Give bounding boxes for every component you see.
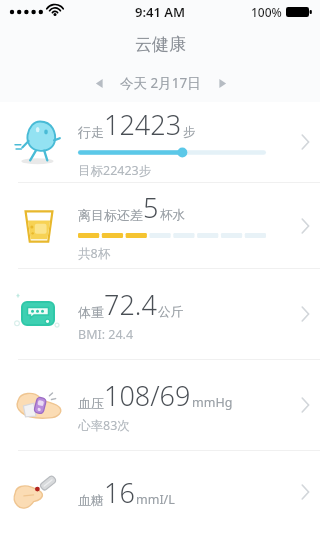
staticText: 体重 bbox=[78, 304, 104, 320]
staticText: 9:41 AM bbox=[0, 3, 320, 21]
button[interactable]: Steps bbox=[0, 102, 320, 182]
button[interactable]: Blood pressure bbox=[0, 360, 320, 450]
staticText: BMI: 24.4 bbox=[78, 326, 134, 343]
staticText: 公斤 bbox=[158, 304, 183, 320]
staticText: 行走 bbox=[78, 124, 104, 140]
other: Blood pressure bbox=[0, 360, 78, 450]
staticText: 离目标还差 bbox=[78, 207, 143, 223]
staticText: mmHg bbox=[192, 394, 233, 411]
staticText: 杯水 bbox=[160, 207, 185, 223]
button[interactable]: Weight bbox=[0, 269, 320, 359]
button[interactable]: Water intake bbox=[0, 183, 320, 268]
staticText: 目标22423步 bbox=[78, 162, 152, 179]
staticText: mmI/L bbox=[136, 491, 175, 508]
staticText: 血糖 bbox=[78, 492, 104, 508]
staticText: 心率83次 bbox=[78, 417, 130, 434]
staticText: 步 bbox=[183, 124, 196, 140]
staticText: 5 bbox=[143, 189, 159, 226]
staticText: 72.4 bbox=[104, 286, 157, 323]
other: Water intake bbox=[0, 183, 78, 268]
button[interactable]: Next day bbox=[211, 72, 233, 94]
button[interactable]: Previous day bbox=[88, 72, 110, 94]
staticText: 云健康 bbox=[135, 34, 186, 55]
staticText: 12423 bbox=[104, 106, 182, 143]
staticText: 108/69 bbox=[104, 377, 191, 414]
staticText: 今天 2月17日 bbox=[120, 74, 201, 92]
staticText: 共8杯 bbox=[78, 245, 111, 262]
staticText: 血压 bbox=[78, 395, 104, 411]
other: Weight bbox=[0, 269, 78, 359]
button[interactable]: Blood glucose bbox=[0, 451, 320, 533]
staticText: 100% bbox=[251, 4, 282, 20]
other: Steps bbox=[0, 102, 78, 182]
other: Blood glucose bbox=[0, 451, 78, 533]
staticText: 16 bbox=[104, 474, 135, 511]
